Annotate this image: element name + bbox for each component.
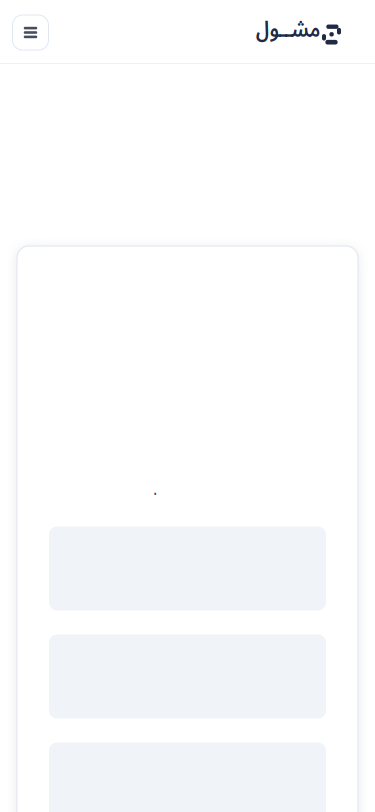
staticText: . xyxy=(153,469,157,506)
button[interactable]: مشول xyxy=(255,16,341,47)
button[interactable]: Menu xyxy=(12,14,48,49)
staticText: مشــول xyxy=(255,13,320,43)
